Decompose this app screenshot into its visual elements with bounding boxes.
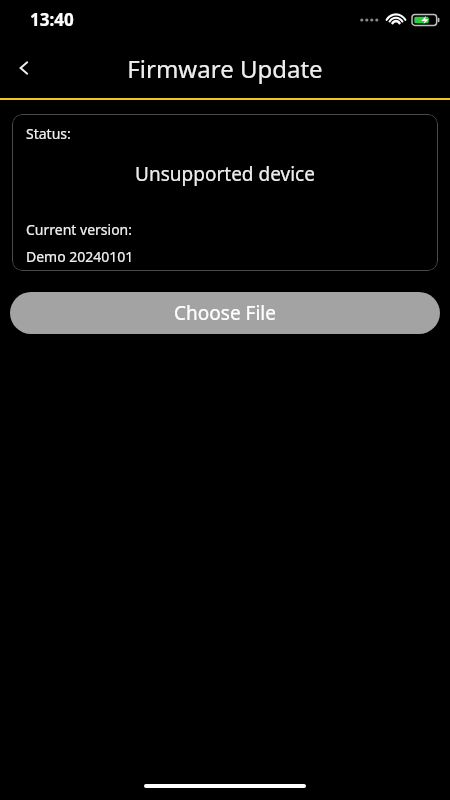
staticText: Unsupported device [26,161,424,187]
button[interactable]: Choose File [10,292,440,334]
staticText: Firmware Update [127,52,323,85]
button[interactable]: Back [0,43,50,93]
staticText: Demo 20240101 [26,247,134,266]
staticText: Choose File [174,300,276,326]
staticText: Status: [26,124,71,143]
staticText: 13:40 [30,8,74,31]
staticText: Current version: [26,220,133,239]
